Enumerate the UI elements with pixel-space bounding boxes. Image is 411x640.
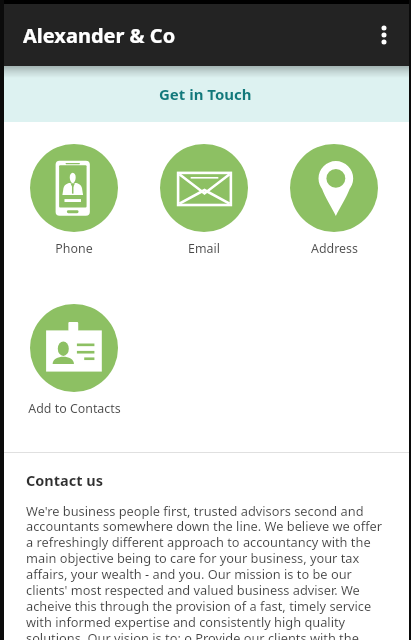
button[interactable]: Address	[269, 144, 399, 257]
staticText: Get in Touch	[159, 84, 252, 104]
button[interactable]: More options	[357, 4, 411, 66]
staticText: We're business people first, trusted adv…	[26, 502, 384, 640]
staticText: Phone	[55, 240, 93, 257]
button[interactable]: Email	[139, 144, 269, 257]
staticText: Alexander & Co	[23, 22, 357, 49]
staticText: Email	[188, 240, 220, 257]
button[interactable]: Add to Contacts	[9, 304, 139, 417]
staticText: Address	[311, 240, 358, 257]
staticText: Add to Contacts	[28, 400, 121, 417]
staticText: Contact us	[26, 470, 104, 490]
button[interactable]: Phone	[9, 144, 139, 257]
button[interactable]: Get in Touch	[0, 66, 411, 122]
